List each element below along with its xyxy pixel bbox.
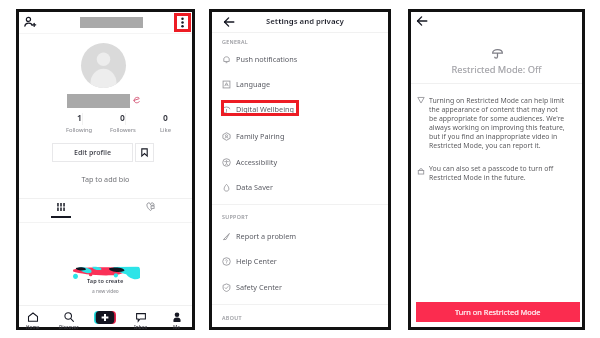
button[interactable]: Create xyxy=(94,311,116,324)
button[interactable]: Home xyxy=(17,311,49,331)
button[interactable]: Back xyxy=(414,13,430,29)
staticText: Inbox xyxy=(134,324,148,330)
staticText: Settings and privacy xyxy=(217,16,393,26)
button[interactable]: Safety Center xyxy=(212,277,388,297)
staticText: GENERAL xyxy=(222,38,248,45)
staticText: Data Saver xyxy=(236,182,273,192)
button[interactable]: Tap to create xyxy=(71,266,140,297)
button[interactable]: Push notifications xyxy=(212,49,388,69)
staticText: Me xyxy=(173,324,181,330)
staticText: 1 xyxy=(77,112,82,124)
button[interactable]: 1 xyxy=(61,112,98,134)
staticText: Tap to create xyxy=(87,277,124,285)
staticText: Followers xyxy=(110,126,136,134)
staticText: Following xyxy=(66,126,93,134)
button[interactable]: Add friends xyxy=(22,15,37,30)
staticText: Discover xyxy=(59,324,79,330)
button[interactable]: Data Saver xyxy=(212,177,388,197)
staticText: Turn on Restricted Mode xyxy=(455,307,541,317)
button[interactable]: Family Pairing xyxy=(212,126,388,146)
staticText: Turning on Restricted Mode can help limi… xyxy=(429,96,566,150)
staticText: a new video xyxy=(92,288,119,295)
staticText: Edit profile xyxy=(74,148,112,158)
button[interactable]: Back xyxy=(221,14,237,30)
button[interactable]: Report a problem xyxy=(212,226,388,246)
staticText: Help Center xyxy=(236,256,277,266)
staticText: You can also set a passcode to turn off … xyxy=(429,164,566,182)
staticText: Restricted Mode: Off xyxy=(411,63,582,76)
button[interactable]: Accessibility xyxy=(212,152,388,172)
staticText: ABOUT xyxy=(222,314,242,321)
button[interactable] xyxy=(42,200,80,220)
button[interactable]: Turn on Restricted Mode xyxy=(416,302,580,322)
staticText: Push notifications xyxy=(236,54,298,64)
staticText: Like xyxy=(160,126,171,134)
button[interactable]: Inbox xyxy=(125,311,157,331)
button[interactable]: Help Center xyxy=(212,251,388,271)
button[interactable]: 0 xyxy=(147,112,184,134)
staticText: 0 xyxy=(120,112,125,124)
staticText: Home xyxy=(26,324,40,330)
staticText: Tap to add bio xyxy=(19,174,192,184)
button[interactable]: Liked videos xyxy=(136,200,164,216)
staticText: 0 xyxy=(163,112,168,124)
button[interactable]: Discover xyxy=(53,311,85,331)
staticText: Safety Center xyxy=(236,282,282,292)
button[interactable]: 0 xyxy=(104,112,141,134)
staticText: Family Pairing xyxy=(236,131,285,141)
button[interactable]: Language xyxy=(212,74,388,94)
button[interactable]: Bookmarks xyxy=(135,143,154,162)
button[interactable]: Digital Wellbeing xyxy=(212,99,388,119)
staticText: SUPPORT xyxy=(222,213,249,220)
staticText: Digital Wellbeing xyxy=(236,104,295,114)
button[interactable]: Edit profile xyxy=(52,143,133,162)
button[interactable]: Me xyxy=(161,311,193,331)
button[interactable]: More options xyxy=(174,13,191,32)
staticText: Accessibility xyxy=(236,157,278,167)
staticText: Report a problem xyxy=(236,231,297,241)
staticText: Language xyxy=(236,79,271,89)
